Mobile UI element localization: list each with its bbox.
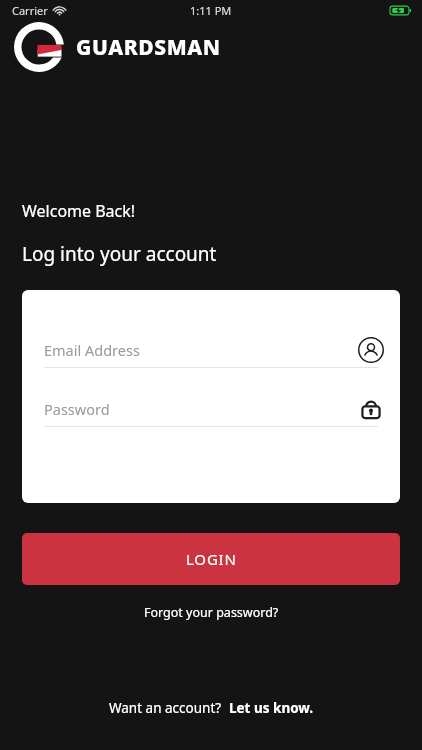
- staticText: Forgot your password?: [144, 604, 279, 621]
- button[interactable]: Email Address: [34, 333, 388, 368]
- staticText: Carrier: [12, 3, 48, 18]
- staticText: Password: [44, 399, 110, 419]
- other: Email address: [358, 337, 384, 363]
- staticText: GUARDSMAN: [76, 33, 221, 62]
- button[interactable]: Let us know.: [229, 699, 314, 717]
- staticText: Want an account?: [109, 699, 222, 717]
- button[interactable]: LOGIN: [22, 533, 400, 585]
- staticText: Welcome Back!: [22, 200, 136, 222]
- staticText: Log into your account: [22, 241, 217, 267]
- button[interactable]: Forgot your password?: [132, 599, 291, 626]
- staticText: Let us know.: [229, 699, 314, 717]
- other: Password: [358, 396, 384, 422]
- staticText: Email Address: [44, 340, 140, 360]
- button[interactable]: Password: [34, 392, 388, 427]
- staticText: 1:11 PM: [190, 3, 232, 18]
- staticText: LOGIN: [186, 549, 237, 569]
